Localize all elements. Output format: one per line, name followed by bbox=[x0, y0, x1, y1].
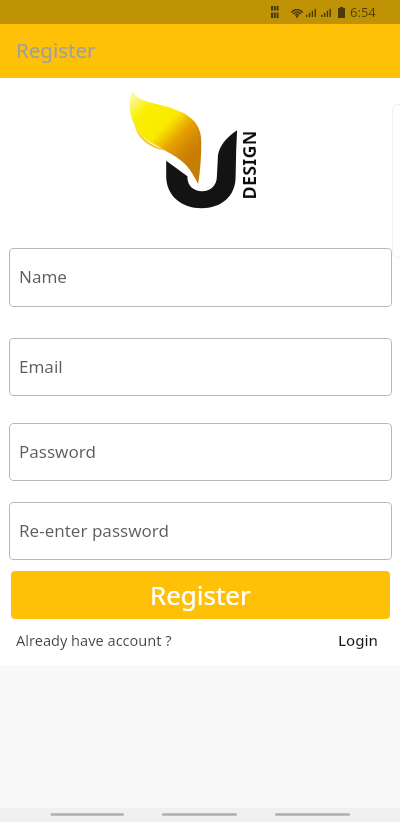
button[interactable]: Login bbox=[338, 630, 378, 650]
button[interactable]: Re-enter password bbox=[9, 502, 392, 560]
button[interactable]: Name bbox=[9, 248, 392, 307]
staticText: Register bbox=[150, 577, 251, 612]
staticText: DESIGN bbox=[236, 129, 261, 199]
staticText: Name bbox=[19, 265, 67, 288]
staticText: Password bbox=[19, 440, 96, 463]
staticText: 6:54 bbox=[350, 3, 376, 21]
staticText: Re-enter password bbox=[19, 519, 169, 542]
button[interactable]: Password bbox=[9, 423, 392, 481]
staticText: Already have account ? bbox=[16, 630, 172, 650]
button[interactable]: Register bbox=[11, 571, 390, 619]
button[interactable]: Email bbox=[9, 338, 392, 396]
staticText: Login bbox=[338, 630, 378, 650]
staticText: Email bbox=[19, 355, 63, 378]
staticText: Register bbox=[16, 36, 96, 64]
